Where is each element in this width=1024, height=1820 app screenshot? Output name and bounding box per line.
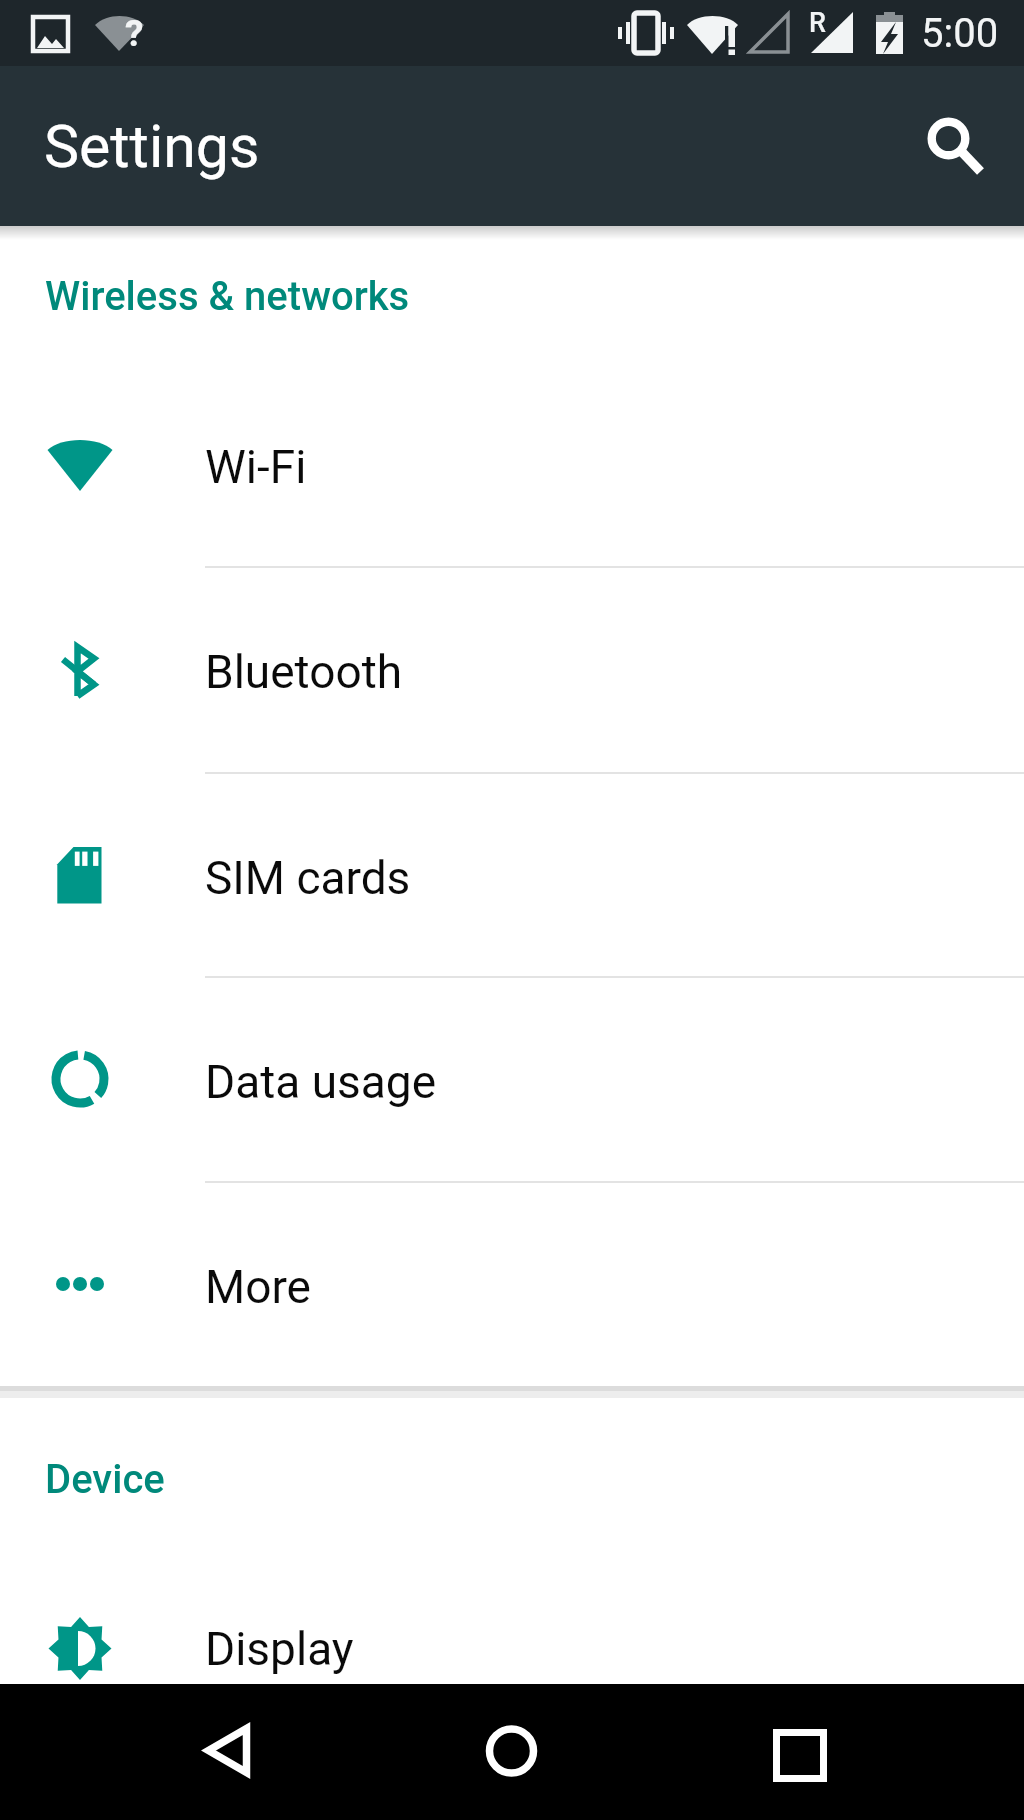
staticText: SIM cards [205, 851, 411, 905]
button[interactable]: Search [900, 90, 1000, 190]
staticText: Settings [44, 112, 260, 181]
button[interactable]: SIM cards [0, 772, 1024, 977]
staticText: Device [45, 1456, 165, 1503]
staticText: 5:00 [921, 10, 999, 57]
staticText: R [809, 7, 826, 39]
staticText: ? [125, 12, 144, 55]
button[interactable]: Back [178, 1701, 278, 1801]
button[interactable]: Recents [746, 1701, 846, 1801]
button[interactable]: Display [0, 1543, 1024, 1684]
button[interactable]: Home [461, 1701, 561, 1801]
button[interactable]: More [0, 1181, 1024, 1386]
button[interactable]: Bluetooth [0, 566, 1024, 771]
button[interactable]: Data usage [0, 976, 1024, 1181]
staticText: Wireless & networks [45, 273, 410, 320]
staticText: More [205, 1260, 311, 1314]
button[interactable]: Wi-Fi [0, 361, 1024, 566]
staticText: Display [205, 1622, 354, 1676]
staticText: Bluetooth [205, 645, 403, 699]
staticText: Data usage [205, 1055, 437, 1109]
staticText: Wi-Fi [205, 440, 307, 494]
